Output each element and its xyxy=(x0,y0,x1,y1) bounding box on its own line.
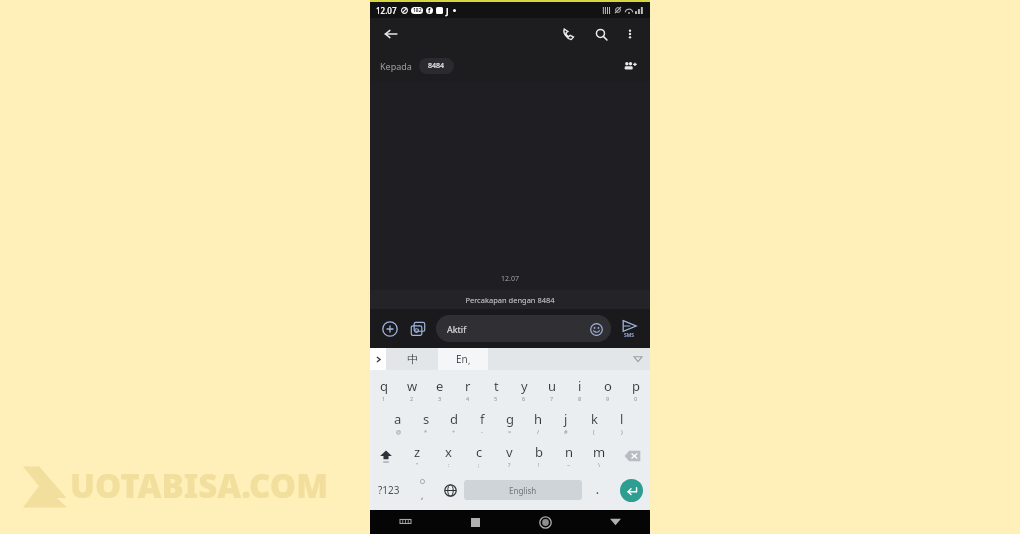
staticText: , xyxy=(421,489,424,501)
button[interactable]: Send SMS xyxy=(616,316,642,342)
button[interactable]: English xyxy=(464,480,582,500)
button[interactable]: e xyxy=(426,373,454,406)
staticText: i xyxy=(578,377,582,395)
staticText: 4 xyxy=(466,395,470,402)
button[interactable]: t xyxy=(482,373,510,406)
button[interactable]: s xyxy=(412,406,440,439)
button[interactable]: c xyxy=(464,439,494,472)
staticText: ?123 xyxy=(378,483,400,497)
staticText: \ xyxy=(598,461,601,468)
button[interactable]: f xyxy=(468,406,496,439)
staticText: 8 xyxy=(578,395,582,402)
staticText: h xyxy=(534,410,543,428)
button[interactable]: u xyxy=(538,373,566,406)
staticText: SMS xyxy=(624,332,635,339)
staticText: 7 xyxy=(550,395,554,402)
staticText: Aktif xyxy=(447,323,467,335)
button[interactable]: Backspace xyxy=(614,439,650,472)
button[interactable]: Enter xyxy=(620,479,643,502)
staticText: b xyxy=(535,443,543,461)
button[interactable]: Emoji xyxy=(587,320,605,338)
button[interactable]: h xyxy=(524,406,552,439)
button[interactable]: p xyxy=(622,373,650,406)
staticText: 1 xyxy=(382,395,386,402)
staticText: ? xyxy=(508,461,511,468)
button[interactable]: Add recipients xyxy=(618,54,642,78)
button[interactable]: y xyxy=(510,373,538,406)
staticText: + xyxy=(452,428,456,435)
button[interactable]: En xyxy=(438,348,488,370)
button[interactable]: a xyxy=(384,406,412,439)
button[interactable]: Attach xyxy=(378,317,402,341)
staticText: g xyxy=(506,410,514,428)
button[interactable]: Call xyxy=(556,21,582,47)
staticText: 182 xyxy=(413,7,422,14)
staticText: En xyxy=(456,352,468,366)
button[interactable]: x xyxy=(433,439,464,472)
button[interactable]: Shift xyxy=(370,439,402,472)
button[interactable]: b xyxy=(524,439,554,472)
button[interactable]: 中 xyxy=(386,348,438,370)
staticText: " xyxy=(416,461,419,468)
button[interactable]: Aktif xyxy=(436,315,611,342)
button[interactable]: Back xyxy=(580,510,650,534)
button[interactable]: Search xyxy=(588,21,614,47)
staticText: f xyxy=(428,7,431,14)
staticText: English xyxy=(509,485,537,496)
staticText: @ xyxy=(396,428,401,435)
staticText: w xyxy=(407,377,418,395)
button[interactable]: k xyxy=(580,406,608,439)
staticText: y xyxy=(521,377,528,395)
staticText: 中 xyxy=(407,352,418,366)
button[interactable]: r xyxy=(454,373,482,406)
staticText: # xyxy=(564,428,568,435)
staticText: 6 xyxy=(522,395,526,402)
button[interactable]: Home xyxy=(510,510,580,534)
staticText: 3 xyxy=(438,395,442,402)
button[interactable]: Camera xyxy=(406,317,430,341)
button[interactable]: ?123 xyxy=(370,472,408,508)
staticText: n xyxy=(565,443,574,461)
staticText: f xyxy=(480,410,485,428)
button[interactable]: l xyxy=(608,406,636,439)
button[interactable]: Change language xyxy=(436,472,464,508)
button[interactable]: Recent apps xyxy=(440,510,510,534)
staticText: l xyxy=(620,410,624,428)
staticText: u xyxy=(548,377,557,395)
button[interactable]: i xyxy=(566,373,594,406)
button[interactable]: , xyxy=(408,472,436,508)
button[interactable]: n xyxy=(554,439,584,472)
button[interactable]: z xyxy=(402,439,433,472)
staticText: v xyxy=(506,443,513,461)
staticText: a xyxy=(394,410,402,428)
button[interactable]: v xyxy=(494,439,524,472)
staticText: c xyxy=(476,443,483,461)
staticText: p xyxy=(632,377,640,395)
button[interactable]: Hide keyboard xyxy=(370,510,440,534)
staticText: = xyxy=(508,428,512,435)
button[interactable]: Expand toolbar xyxy=(370,348,386,370)
button[interactable]: 8484 xyxy=(419,58,454,74)
button[interactable]: d xyxy=(440,406,468,439)
button[interactable]: g xyxy=(496,406,524,439)
button[interactable]: Back xyxy=(378,21,404,47)
staticText: Percakapan dengan 8484 xyxy=(465,295,555,305)
staticText: s xyxy=(423,410,430,428)
button[interactable] xyxy=(488,348,650,370)
staticText: * xyxy=(424,428,428,435)
button[interactable]: . xyxy=(582,472,612,508)
button[interactable]: m xyxy=(584,439,614,472)
button[interactable]: w xyxy=(398,373,426,406)
staticText: 2 xyxy=(410,395,414,402)
button[interactable]: More options xyxy=(618,22,642,46)
button[interactable]: o xyxy=(594,373,622,406)
staticText: x xyxy=(445,443,452,461)
staticText: z xyxy=(414,443,421,461)
button[interactable]: q xyxy=(370,373,398,406)
staticText: ! xyxy=(538,461,540,468)
staticText: ~ xyxy=(567,461,571,468)
button[interactable]: j xyxy=(552,406,580,439)
staticText: m xyxy=(593,443,606,461)
staticText: ( xyxy=(593,428,595,435)
staticText: : xyxy=(448,461,450,468)
